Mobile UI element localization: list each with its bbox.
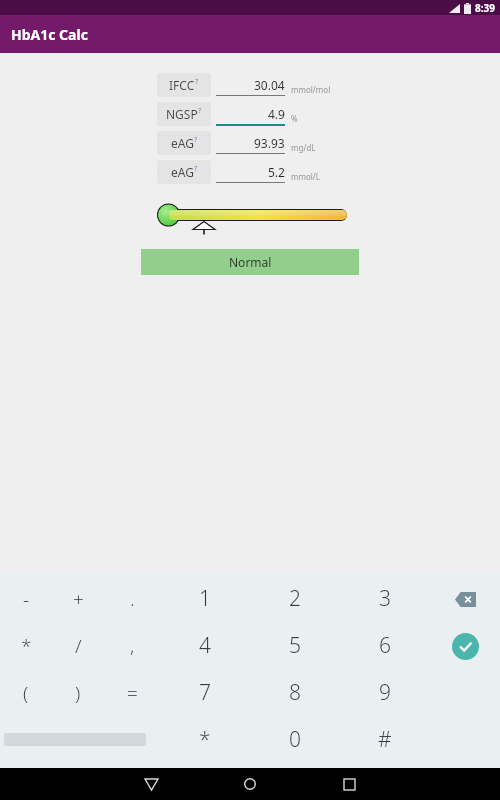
button[interactable]: ) bbox=[52, 669, 104, 716]
button[interactable]: Normal bbox=[141, 249, 359, 275]
staticText: 30.04 bbox=[254, 77, 285, 93]
button[interactable]: 9 bbox=[340, 669, 430, 716]
button[interactable]: * bbox=[160, 716, 250, 763]
button[interactable]: * bbox=[0, 622, 52, 669]
staticText: 6 bbox=[379, 631, 391, 660]
button[interactable]: Backspace bbox=[445, 579, 485, 619]
staticText: 5 bbox=[289, 631, 301, 660]
staticText: ( bbox=[23, 680, 29, 706]
button[interactable]: 4.9 bbox=[216, 102, 285, 126]
button[interactable]: 2 bbox=[250, 575, 340, 622]
button[interactable]: 6 bbox=[340, 622, 430, 669]
button[interactable]: Space bbox=[0, 716, 160, 763]
staticText: 0 bbox=[289, 725, 301, 754]
staticText: 5.2 bbox=[268, 164, 285, 180]
staticText: ? bbox=[195, 77, 199, 87]
staticText: - bbox=[23, 586, 30, 612]
button[interactable]: 5 bbox=[250, 622, 340, 669]
staticText: 8 bbox=[289, 678, 301, 707]
staticText: 3 bbox=[379, 584, 391, 613]
staticText: Normal bbox=[229, 254, 272, 270]
staticText: NGSP bbox=[166, 106, 198, 122]
button[interactable]: . bbox=[104, 575, 160, 622]
staticText: IFCC bbox=[169, 77, 195, 93]
staticText: . bbox=[130, 586, 135, 612]
button[interactable]: 4 bbox=[160, 622, 250, 669]
staticText: 2 bbox=[289, 584, 301, 613]
staticText: 8:39 bbox=[475, 1, 495, 15]
button[interactable]: 0 bbox=[250, 716, 340, 763]
button[interactable]: Done bbox=[446, 627, 484, 665]
button[interactable]: Back bbox=[136, 769, 166, 799]
staticText: ) bbox=[75, 680, 81, 706]
staticText: + bbox=[73, 586, 84, 612]
staticText: * bbox=[199, 725, 211, 754]
button[interactable]: 8 bbox=[250, 669, 340, 716]
button[interactable]: IFCC bbox=[157, 73, 211, 97]
staticText: HbA1c Calc bbox=[11, 25, 88, 44]
button[interactable]: + bbox=[52, 575, 104, 622]
staticText: mmol/mol bbox=[291, 84, 331, 95]
button[interactable]: - bbox=[0, 575, 52, 622]
staticText: % bbox=[291, 113, 298, 124]
button[interactable]: , bbox=[104, 622, 160, 669]
staticText: 4.9 bbox=[268, 106, 285, 122]
staticText: ? bbox=[198, 106, 202, 116]
button[interactable]: 93.93 bbox=[216, 131, 285, 154]
button[interactable]: eAG bbox=[157, 131, 211, 155]
staticText: = bbox=[127, 680, 138, 706]
staticText: mg/dL bbox=[291, 142, 316, 153]
staticText: mmol/L bbox=[291, 171, 321, 182]
staticText: / bbox=[75, 633, 82, 659]
button[interactable]: 7 bbox=[160, 669, 250, 716]
button[interactable]: 5.2 bbox=[216, 160, 285, 183]
button[interactable]: eAG bbox=[157, 160, 211, 184]
button[interactable]: Recents bbox=[334, 769, 364, 799]
staticText: 93.93 bbox=[254, 135, 285, 151]
staticText: 9 bbox=[379, 678, 391, 707]
button[interactable]: / bbox=[52, 622, 104, 669]
button[interactable]: = bbox=[104, 669, 160, 716]
button[interactable]: HbA1c level slider bbox=[0, 204, 500, 236]
staticText: ? bbox=[194, 135, 198, 145]
staticText: 1 bbox=[199, 584, 211, 613]
staticText: eAG bbox=[171, 164, 194, 180]
staticText: , bbox=[130, 633, 135, 659]
button[interactable]: 1 bbox=[160, 575, 250, 622]
button[interactable]: ( bbox=[0, 669, 52, 716]
staticText: * bbox=[21, 633, 32, 659]
staticText: ? bbox=[194, 164, 198, 174]
staticText: # bbox=[378, 725, 392, 754]
button[interactable]: NGSP bbox=[157, 102, 211, 126]
button[interactable]: Home bbox=[235, 769, 265, 799]
staticText: 7 bbox=[199, 678, 211, 707]
button[interactable]: 30.04 bbox=[216, 73, 285, 96]
staticText: 4 bbox=[199, 631, 211, 660]
button[interactable]: # bbox=[340, 716, 430, 763]
button[interactable]: 3 bbox=[340, 575, 430, 622]
staticText: eAG bbox=[171, 135, 194, 151]
